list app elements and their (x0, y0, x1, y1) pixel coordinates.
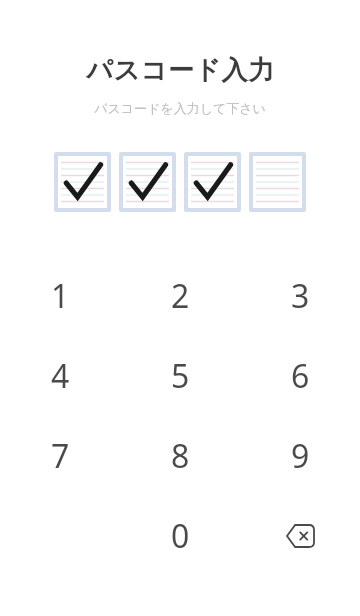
staticText: 4 (51, 354, 70, 398)
staticText: 6 (291, 354, 310, 398)
staticText: パスコードを入力して下さい (94, 100, 266, 116)
staticText: 7 (51, 434, 70, 478)
staticText: パスコード入力 (86, 54, 275, 87)
button[interactable]: 6 (240, 336, 360, 416)
button[interactable]: 2 (120, 256, 240, 336)
button[interactable]: 1 (0, 256, 120, 336)
button[interactable]: 0 (120, 496, 240, 576)
staticText: 0 (171, 514, 190, 558)
staticText: 2 (171, 274, 190, 318)
button[interactable]: 3 (240, 256, 360, 336)
staticText: 8 (171, 434, 190, 478)
button[interactable]: 4 (0, 336, 120, 416)
button[interactable]: 9 (240, 416, 360, 496)
staticText: 5 (171, 354, 190, 398)
button[interactable]: 8 (120, 416, 240, 496)
staticText: 3 (291, 274, 310, 318)
button[interactable]: Backspace (240, 496, 360, 576)
button[interactable]: 5 (120, 336, 240, 416)
staticText: 9 (291, 434, 310, 478)
staticText: 1 (51, 274, 70, 318)
button[interactable]: 7 (0, 416, 120, 496)
